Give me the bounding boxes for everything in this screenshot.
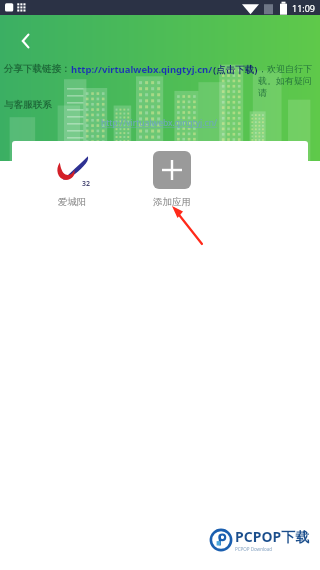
staticText: 32 [82, 179, 91, 189]
staticText: http://virtualwebx.qingtyj.cn/ [71, 63, 213, 76]
button[interactable]: 添加应用 [122, 151, 222, 208]
staticText: 爱城阳 [58, 196, 87, 208]
staticText: 添加应用 [153, 196, 191, 208]
button[interactable]: Back [8, 23, 44, 59]
staticText: 11:09 [292, 2, 316, 14]
staticText: (点击下载) [213, 63, 258, 76]
staticText: PCPOP Download [235, 546, 273, 552]
staticText: ，欢迎自行下载。如有疑问请 [258, 63, 314, 99]
staticText: 与客服联系 [4, 99, 52, 111]
staticText: http://virtualwebx.qingtyj.cn/ [4, 117, 314, 129]
staticText: 分享下载链接： [4, 63, 71, 75]
staticText: PCPOP下载 [235, 527, 310, 546]
button[interactable]: 32 [22, 151, 122, 208]
